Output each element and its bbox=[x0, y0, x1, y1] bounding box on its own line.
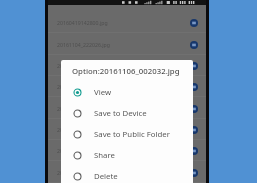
button[interactable]: 20160419142800.jpg bbox=[48, 12, 206, 33]
staticText: Share bbox=[94, 150, 115, 161]
button[interactable]: Save to Public Folder bbox=[61, 124, 193, 145]
button[interactable]: 20161118_173344.jpg bbox=[48, 140, 206, 161]
staticText: 20161118_173344.jpg bbox=[57, 147, 110, 154]
other: Open photo bbox=[190, 126, 198, 134]
staticText: 20161104_222026.jpg bbox=[57, 41, 110, 48]
button[interactable]: 20161106_002113.jpg bbox=[48, 76, 206, 97]
staticText: 20161115_091020.jpg bbox=[57, 126, 110, 133]
other: Open photo bbox=[190, 62, 198, 70]
staticText: Delete bbox=[94, 171, 118, 182]
button[interactable]: View bbox=[61, 82, 193, 103]
button[interactable]: 20161112_144511.jpg bbox=[48, 98, 206, 119]
staticText: 20160419142800.jpg bbox=[57, 19, 108, 26]
staticText: 20161106_002032.jpg bbox=[57, 62, 110, 69]
staticText: Save to Public Folder bbox=[94, 129, 170, 140]
staticText: 20161106_002113.jpg bbox=[57, 83, 110, 90]
staticText: 20161112_144511.jpg bbox=[57, 105, 110, 112]
button[interactable]: Save to Device bbox=[61, 103, 193, 124]
other: Open photo bbox=[190, 41, 198, 49]
button[interactable]: 20161106_002032.jpg bbox=[48, 55, 206, 76]
staticText: Option:20161106_002032.jpg bbox=[72, 66, 180, 77]
button[interactable]: 20161122_201055.jpg bbox=[48, 162, 206, 183]
other: Open photo bbox=[190, 147, 198, 155]
other: Open photo bbox=[190, 105, 198, 113]
other: Open photo bbox=[190, 19, 198, 27]
other: Open photo bbox=[190, 169, 198, 177]
staticText: Save to Device bbox=[94, 108, 147, 119]
button[interactable]: 20161115_091020.jpg bbox=[48, 119, 206, 140]
button[interactable]: Delete bbox=[61, 166, 193, 183]
button[interactable]: 20161104_222026.jpg bbox=[48, 34, 206, 55]
button[interactable]: Share bbox=[61, 145, 193, 166]
staticText: View bbox=[94, 87, 112, 98]
other: Open photo bbox=[190, 83, 198, 91]
staticText: 20161122_201055.jpg bbox=[57, 169, 110, 176]
